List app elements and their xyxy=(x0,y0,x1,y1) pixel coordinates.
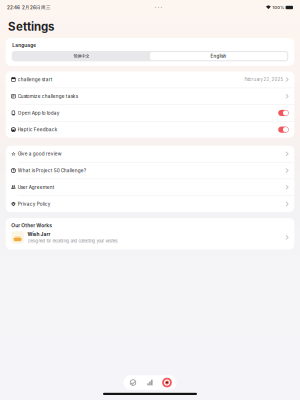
staticText: Our Other Works xyxy=(11,222,52,228)
staticText: 100% xyxy=(272,5,284,10)
button[interactable]: Privacy Policy xyxy=(6,196,294,212)
staticText: Give a good review xyxy=(18,151,62,157)
button[interactable]: Customize challenge tasks xyxy=(6,88,294,104)
staticText: Settings xyxy=(8,20,54,33)
button[interactable]: 简体中文 xyxy=(13,52,150,60)
staticText: challenge start xyxy=(18,77,53,82)
staticText: ? xyxy=(12,168,14,173)
button[interactable]: Give a good review xyxy=(6,146,294,162)
button[interactable]: English xyxy=(150,52,287,60)
staticText: 22:46 2月26日周三 xyxy=(7,5,51,10)
staticText: Haptic Feedback xyxy=(18,127,58,132)
button[interactable]: Settings xyxy=(158,375,175,389)
staticText: • • • xyxy=(154,5,162,10)
staticText: English xyxy=(211,54,227,59)
staticText: Designed for recording and collecting yo… xyxy=(27,238,117,243)
button[interactable]: Wish Jarr xyxy=(6,228,294,249)
button[interactable]: ? xyxy=(6,162,294,179)
button[interactable]: Open App to today xyxy=(6,105,294,121)
staticText: February 22, 2025 xyxy=(244,77,283,82)
button[interactable]: Statistics xyxy=(141,375,158,389)
staticText: Language xyxy=(12,42,36,48)
staticText: 简体中文 xyxy=(73,53,89,59)
button[interactable]: User Agreement xyxy=(6,179,294,195)
staticText: What is Project 50 Challenge? xyxy=(18,168,86,173)
button[interactable]: challenge start xyxy=(6,71,294,88)
staticText: User Agreement xyxy=(18,184,55,190)
button[interactable]: Tasks xyxy=(124,375,141,389)
staticText: Open App to today xyxy=(18,110,60,116)
button[interactable]: Haptic Feedback xyxy=(6,121,294,138)
staticText: Wish Jarr xyxy=(27,231,50,237)
staticText: Privacy Policy xyxy=(18,201,51,207)
staticText: Customize challenge tasks xyxy=(18,93,78,99)
